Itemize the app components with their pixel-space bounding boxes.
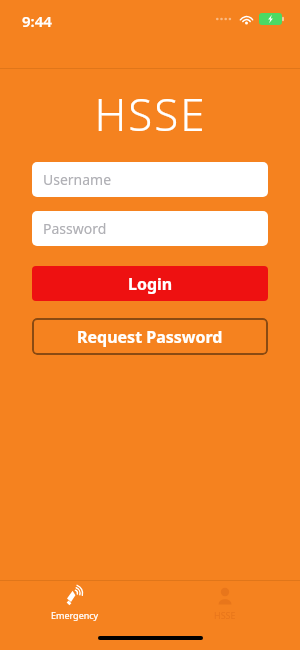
other: Emergency [65, 586, 85, 606]
staticText: Login [128, 273, 173, 295]
staticText: HSSE [94, 84, 207, 144]
button[interactable]: Emergency [0, 581, 150, 626]
button[interactable]: Password [32, 211, 268, 246]
button[interactable]: Username [32, 162, 268, 197]
button[interactable]: Login [32, 266, 268, 301]
staticText: HSSE [214, 609, 236, 621]
staticText: Emergency [51, 609, 99, 621]
staticText: Username [43, 170, 112, 189]
staticText: 9:44 [22, 11, 52, 31]
staticText: Password [43, 219, 107, 238]
button[interactable]: Request Password [32, 318, 268, 355]
staticText: Request Password [77, 326, 223, 348]
other: HSSE [215, 586, 235, 606]
